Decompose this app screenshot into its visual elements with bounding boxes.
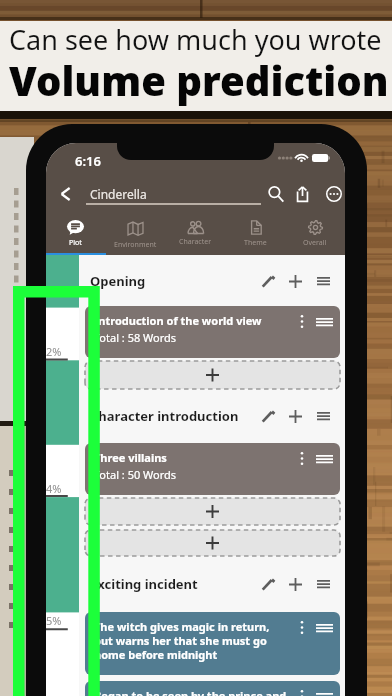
staticText: 4%	[46, 481, 62, 496]
button[interactable]: Edit	[254, 571, 280, 597]
staticText: Opening	[90, 272, 146, 290]
button[interactable]: Environment	[105, 217, 165, 255]
staticText: 6:16	[75, 152, 101, 170]
staticText: Character	[179, 237, 212, 247]
button[interactable]: Reorder	[310, 571, 336, 597]
button[interactable]: Edit	[254, 403, 280, 429]
button[interactable]: Share	[289, 180, 316, 207]
staticText: Began to be seen by the prince and	[94, 688, 287, 696]
staticText: Overall	[303, 238, 327, 248]
staticText: 2%	[46, 344, 62, 359]
button[interactable]: Overall	[285, 217, 345, 255]
button[interactable]: Edit	[254, 268, 280, 294]
button[interactable]: More options	[320, 180, 345, 207]
staticText: Exciting incident	[90, 575, 198, 593]
staticText: Volume prediction	[9, 53, 389, 107]
staticText: The witch gives magic in return, but war…	[94, 619, 288, 662]
button[interactable]: Theme	[225, 217, 285, 255]
button[interactable]: Search	[262, 180, 289, 207]
staticText: Total : 50 Words	[94, 467, 177, 482]
staticText: Total : 58 Words	[94, 330, 177, 345]
button[interactable]: Three villains	[85, 443, 340, 495]
button[interactable]: Character	[165, 217, 225, 255]
button[interactable]: Add	[282, 268, 308, 294]
staticText: Plot	[69, 238, 82, 248]
staticText: Introduction of the world view	[94, 313, 262, 328]
staticText: Cinderella	[90, 186, 147, 202]
button[interactable]: Plot	[46, 217, 105, 255]
button[interactable]: Reorder	[310, 403, 336, 429]
button[interactable]: Add	[282, 571, 308, 597]
button[interactable]: Back	[52, 180, 79, 207]
button[interactable]: Began to be seen by the prince and	[85, 681, 340, 696]
button[interactable]: Reorder	[310, 268, 336, 294]
staticText: 5%	[46, 613, 62, 628]
button[interactable]: Introduction of the world view	[85, 306, 340, 358]
staticText: Character introduction	[90, 407, 239, 425]
button[interactable]: Add	[282, 403, 308, 429]
staticText: Theme	[244, 238, 267, 248]
staticText: Can see how much you wrote	[9, 21, 382, 58]
staticText: Three villains	[94, 450, 167, 465]
button[interactable]: The witch gives magic in return, but war…	[85, 612, 340, 675]
staticText: Environment	[114, 240, 157, 250]
